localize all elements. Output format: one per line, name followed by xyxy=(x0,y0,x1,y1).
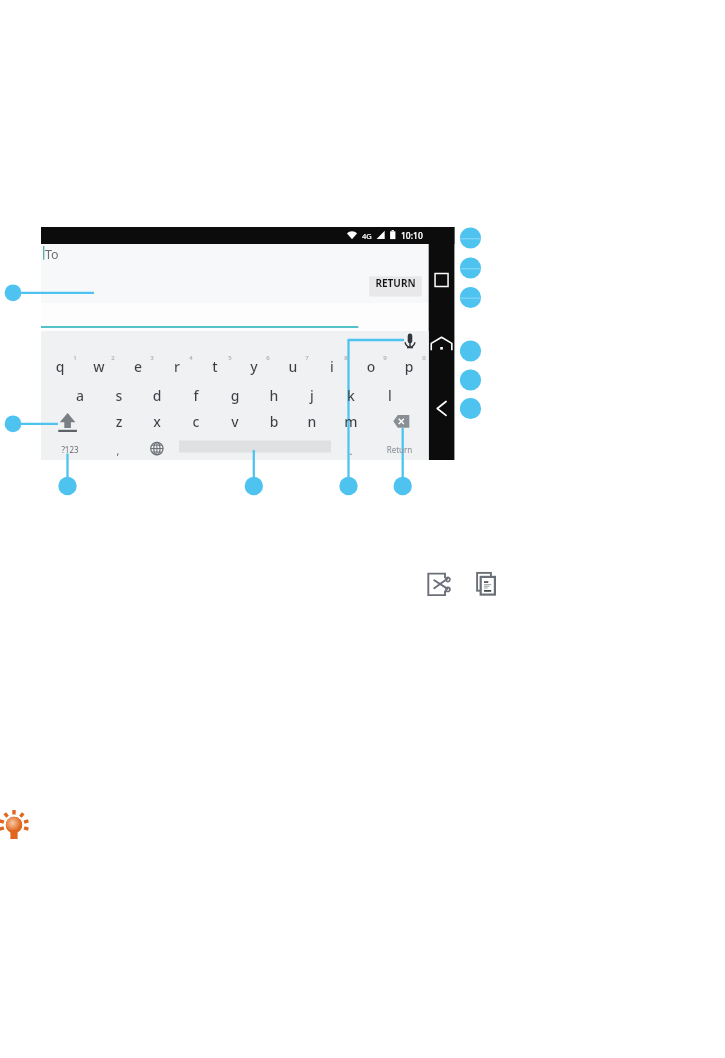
staticText: q xyxy=(48,357,72,375)
staticText: t xyxy=(203,357,227,375)
button[interactable]: c xyxy=(184,412,208,430)
staticText: 3 xyxy=(147,354,157,363)
staticText: b xyxy=(262,412,286,430)
button[interactable]: o xyxy=(359,357,383,375)
staticText: , xyxy=(111,443,125,457)
staticText: e xyxy=(126,357,150,375)
button[interactable]: b xyxy=(262,412,286,430)
button[interactable]: f xyxy=(184,386,208,404)
button[interactable]: Return xyxy=(369,276,422,296)
staticText: To xyxy=(45,246,69,262)
button[interactable]: e xyxy=(126,357,150,375)
staticText: h xyxy=(262,386,286,404)
staticText: 0 xyxy=(419,354,429,363)
staticText: m xyxy=(339,412,363,430)
staticText: 5 xyxy=(225,354,235,363)
staticText: x xyxy=(145,412,169,430)
button[interactable]: q xyxy=(48,357,72,375)
staticText: 4G xyxy=(362,231,376,242)
staticText: 4 xyxy=(186,354,196,363)
button[interactable]: Shift xyxy=(53,409,82,435)
staticText: 7 xyxy=(302,354,312,363)
button[interactable]: y xyxy=(242,357,266,375)
button[interactable]: s xyxy=(107,386,131,404)
staticText: p xyxy=(397,357,421,375)
button[interactable]: a xyxy=(68,386,92,404)
button[interactable]: w xyxy=(87,357,111,375)
staticText: c xyxy=(184,412,208,430)
button[interactable]: Space xyxy=(179,438,331,455)
button[interactable]: ?123 xyxy=(56,444,84,458)
button[interactable]: Back xyxy=(429,395,455,423)
staticText: d xyxy=(145,386,169,404)
staticText: i xyxy=(320,357,344,375)
button[interactable]: j xyxy=(300,386,324,404)
button[interactable]: k xyxy=(339,386,363,404)
staticText: r xyxy=(165,357,189,375)
staticText: 10:10 xyxy=(401,230,427,243)
button[interactable]: Cut xyxy=(424,570,452,598)
staticText: RETURN xyxy=(369,276,422,296)
staticText: s xyxy=(107,386,131,404)
button[interactable]: u xyxy=(281,357,305,375)
staticText: l xyxy=(378,386,402,404)
staticText: 2 xyxy=(108,354,118,363)
staticText: k xyxy=(339,386,363,404)
button[interactable]: z xyxy=(107,412,131,430)
button[interactable]: Home xyxy=(429,329,455,357)
button[interactable]: x xyxy=(145,412,169,430)
button[interactable]: Return xyxy=(383,444,416,458)
staticText: Return xyxy=(383,444,416,458)
button[interactable]: m xyxy=(339,412,363,430)
button[interactable]: h xyxy=(262,386,286,404)
button[interactable]: v xyxy=(223,412,247,430)
staticText: y xyxy=(242,357,266,375)
staticText: ?123 xyxy=(56,444,84,458)
button[interactable]: Change keyboard language xyxy=(145,439,169,455)
button[interactable]: Recent apps xyxy=(429,266,455,294)
button[interactable]: d xyxy=(145,386,169,404)
button[interactable]: n xyxy=(300,412,324,430)
button[interactable]: r xyxy=(165,357,189,375)
staticText: v xyxy=(223,412,247,430)
staticText: 9 xyxy=(380,354,390,363)
staticText: o xyxy=(359,357,383,375)
button[interactable]: i xyxy=(320,357,344,375)
staticText: g xyxy=(223,386,247,404)
staticText: j xyxy=(300,386,324,404)
staticText: z xyxy=(107,412,131,430)
button[interactable]: l xyxy=(378,386,402,404)
button[interactable]: Delete xyxy=(391,413,412,430)
staticText: . xyxy=(344,443,358,457)
staticText: 8 xyxy=(341,354,351,363)
staticText: u xyxy=(281,357,305,375)
button[interactable]: g xyxy=(223,386,247,404)
staticText: a xyxy=(68,386,92,404)
staticText: n xyxy=(300,412,324,430)
staticText: 1 xyxy=(70,354,80,363)
button[interactable]: t xyxy=(203,357,227,375)
staticText: 6 xyxy=(263,354,273,363)
button[interactable]: Copy xyxy=(473,569,501,597)
button[interactable]: p xyxy=(397,357,421,375)
staticText: w xyxy=(87,357,111,375)
staticText: f xyxy=(184,386,208,404)
button[interactable]: Voice input xyxy=(400,330,421,351)
